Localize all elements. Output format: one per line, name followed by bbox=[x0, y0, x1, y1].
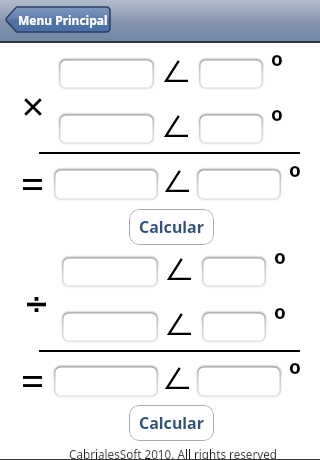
staticText: o bbox=[289, 354, 301, 380]
button[interactable]: Number input bbox=[54, 366, 158, 397]
button[interactable]: Number input bbox=[59, 59, 154, 89]
staticText: CabrialesSoft 2010. All rights reserved bbox=[69, 446, 277, 460]
button[interactable]: Number input bbox=[197, 366, 281, 397]
button[interactable]: Number input bbox=[202, 312, 266, 342]
staticText: Calcular bbox=[139, 412, 204, 434]
button[interactable]: Back to Menu Principal bbox=[4, 6, 111, 33]
staticText: Menu Principal bbox=[18, 12, 108, 28]
staticText: o bbox=[271, 101, 283, 127]
staticText: o bbox=[271, 46, 283, 72]
button[interactable]: Calcular bbox=[129, 405, 214, 441]
button[interactable]: Calcular bbox=[129, 209, 214, 245]
button[interactable]: Number input bbox=[199, 59, 263, 89]
button[interactable]: Number input bbox=[199, 114, 263, 144]
staticText: o bbox=[274, 244, 286, 270]
staticText: o bbox=[274, 299, 286, 325]
button[interactable]: Number input bbox=[59, 114, 154, 144]
button[interactable]: Number input bbox=[62, 312, 158, 342]
staticText: o bbox=[289, 157, 301, 183]
button[interactable]: Number input bbox=[202, 257, 266, 287]
staticText: Calcular bbox=[139, 216, 204, 238]
button[interactable]: Number input bbox=[54, 169, 158, 200]
button[interactable]: Number input bbox=[197, 169, 281, 200]
button[interactable]: Number input bbox=[62, 257, 158, 287]
